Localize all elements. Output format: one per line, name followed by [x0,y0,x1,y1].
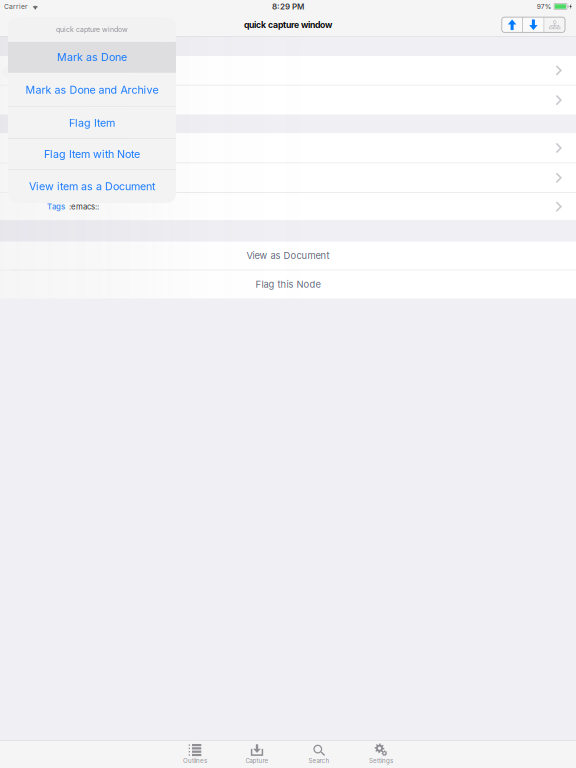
staticText: 8:29 PM [272,2,304,11]
button[interactable]: Search [288,742,350,766]
button[interactable] [0,163,576,192]
staticText: Flag this Node [255,279,320,290]
button[interactable]: Flag Item with Note [8,139,176,169]
button[interactable]: Flag Item [8,107,176,138]
button[interactable]: Promote [502,17,522,32]
staticText: View as Document [246,250,329,261]
staticText: Capture [245,757,268,764]
staticText: Flag Item with Note [44,148,140,161]
button[interactable] [0,85,576,115]
button[interactable]: Settings [350,742,412,766]
staticText: Mark as Done and Archive [25,83,158,96]
staticText: Outlines [183,757,207,764]
button[interactable]: Demote [523,17,544,32]
staticText: 97% [537,2,552,11]
button[interactable] [0,56,576,85]
button[interactable]: Mark as Done and Archive [8,73,176,106]
staticText: View item as a Document [29,180,155,193]
staticText: Mark as Done [57,51,127,64]
staticText: Settings [369,757,393,764]
button[interactable]: Flag this Node [0,270,576,298]
staticText: :emacs:: [69,202,99,211]
staticText: quick capture window [244,19,332,30]
staticText: Carrier [4,2,28,11]
button[interactable]: Capture [226,742,288,766]
button[interactable] [0,133,576,163]
button[interactable]: Tags [0,193,576,220]
staticText: quick capture window [56,25,128,34]
staticText: Flag Item [69,116,115,129]
button[interactable]: View item as a Document [8,170,176,203]
button[interactable]: Mark as Done [8,42,176,72]
button[interactable]: Outlines [164,742,226,766]
staticText: Search [308,757,329,764]
button[interactable]: View as Document [0,241,576,270]
staticText: Tags [47,202,65,211]
button[interactable]: Outline view [544,17,565,32]
